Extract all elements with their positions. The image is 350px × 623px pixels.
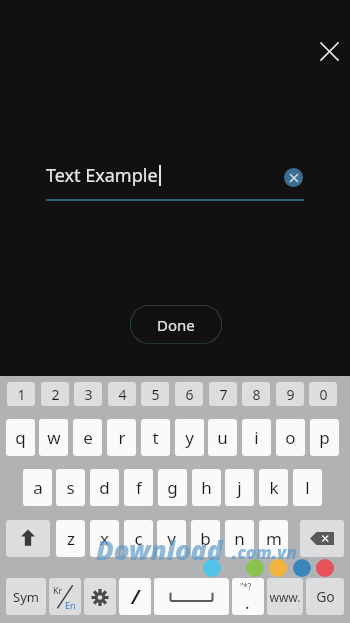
button[interactable]: 8	[242, 382, 270, 406]
staticText: Sym	[13, 588, 39, 606]
staticText: e	[83, 426, 93, 449]
button[interactable]: Settings	[84, 578, 116, 615]
staticText: j	[237, 476, 242, 499]
button[interactable]: /	[119, 578, 151, 615]
staticText: En	[65, 599, 76, 611]
staticText: o	[285, 426, 296, 449]
button[interactable]: w	[39, 419, 68, 456]
button[interactable]: 6	[175, 382, 203, 406]
staticText: Go	[316, 587, 335, 606]
button[interactable]: 0	[309, 382, 337, 406]
button[interactable]: g	[158, 469, 187, 506]
staticText: l	[305, 476, 310, 499]
button[interactable]: Shift	[6, 520, 50, 557]
button[interactable]: n	[225, 520, 254, 557]
button[interactable]: e	[73, 419, 102, 456]
staticText: p	[319, 426, 330, 449]
button[interactable]: p	[310, 419, 339, 456]
staticText: 6	[185, 385, 194, 404]
staticText: b	[200, 527, 211, 550]
button[interactable]: Change language	[49, 578, 81, 615]
staticText: m	[266, 527, 282, 550]
button[interactable]: m	[259, 520, 288, 557]
button[interactable]: i	[242, 419, 271, 456]
button[interactable]: 7	[209, 382, 237, 406]
button[interactable]: c	[124, 520, 153, 557]
button[interactable]: u	[208, 419, 237, 456]
button[interactable]: 4	[108, 382, 136, 406]
staticText: r	[118, 426, 126, 449]
staticText: 3	[84, 385, 93, 404]
button[interactable]: Done	[130, 305, 222, 344]
staticText: Download	[96, 532, 223, 567]
button[interactable]: f	[124, 469, 153, 506]
button[interactable]: v	[157, 520, 186, 557]
staticText: x	[100, 527, 109, 550]
staticText: a	[33, 476, 43, 499]
button[interactable]: Space	[154, 578, 229, 615]
staticText: d	[99, 476, 110, 499]
button[interactable]: a	[23, 469, 52, 506]
staticText: q	[15, 426, 26, 449]
button[interactable]: 3	[74, 382, 102, 406]
button[interactable]: y	[175, 419, 204, 456]
button[interactable]: r	[107, 419, 136, 456]
button[interactable]: 5	[141, 382, 169, 406]
button[interactable]: j	[225, 469, 254, 506]
button[interactable]: www.	[267, 578, 303, 615]
staticText: w	[47, 426, 61, 449]
button[interactable]: Go	[306, 578, 344, 615]
staticText: /	[131, 584, 140, 610]
staticText: i	[254, 426, 259, 449]
button[interactable]: 2	[41, 382, 69, 406]
staticText: Text Example	[46, 163, 158, 188]
staticText: Done	[157, 315, 195, 335]
button[interactable]: Backspace	[300, 520, 344, 557]
staticText: 1	[17, 385, 26, 404]
button[interactable]: d	[90, 469, 119, 506]
button[interactable]: 9	[276, 382, 304, 406]
staticText: v	[167, 527, 176, 550]
staticText: 7	[219, 385, 228, 404]
staticText: 2	[51, 385, 60, 404]
staticText: g	[167, 476, 178, 499]
staticText: n	[234, 527, 245, 550]
staticText: k	[269, 476, 279, 499]
button[interactable]: o	[276, 419, 305, 456]
button[interactable]: Close	[312, 34, 346, 68]
staticText: f	[136, 476, 142, 499]
staticText: 4	[118, 385, 127, 404]
staticText: "*?	[240, 581, 252, 592]
staticText: c	[134, 527, 143, 550]
staticText: s	[66, 476, 75, 499]
staticText: u	[217, 426, 228, 449]
button[interactable]: t	[141, 419, 170, 456]
staticText: 9	[286, 385, 295, 404]
staticText: h	[201, 476, 212, 499]
staticText: t	[152, 426, 159, 449]
staticText: .com.vn	[232, 541, 297, 564]
staticText: z	[67, 527, 75, 550]
staticText: .	[245, 591, 250, 614]
staticText: y	[185, 426, 194, 449]
button[interactable]: Sym	[6, 578, 46, 615]
staticText: 5	[151, 385, 160, 404]
button[interactable]: l	[293, 469, 322, 506]
button[interactable]: k	[259, 469, 288, 506]
button[interactable]: Period	[232, 578, 264, 615]
button[interactable]: s	[56, 469, 85, 506]
button[interactable]: Clear text	[284, 168, 303, 187]
button[interactable]: x	[90, 520, 119, 557]
button[interactable]: h	[192, 469, 221, 506]
button[interactable]: z	[56, 520, 85, 557]
button[interactable]: b	[191, 520, 220, 557]
staticText: 0	[319, 385, 328, 404]
staticText: www.	[269, 589, 301, 605]
button[interactable]: Text Example	[46, 160, 304, 202]
staticText: 8	[252, 385, 261, 404]
button[interactable]: 1	[7, 382, 35, 406]
button[interactable]: q	[6, 419, 35, 456]
staticText: Kr	[53, 584, 63, 596]
